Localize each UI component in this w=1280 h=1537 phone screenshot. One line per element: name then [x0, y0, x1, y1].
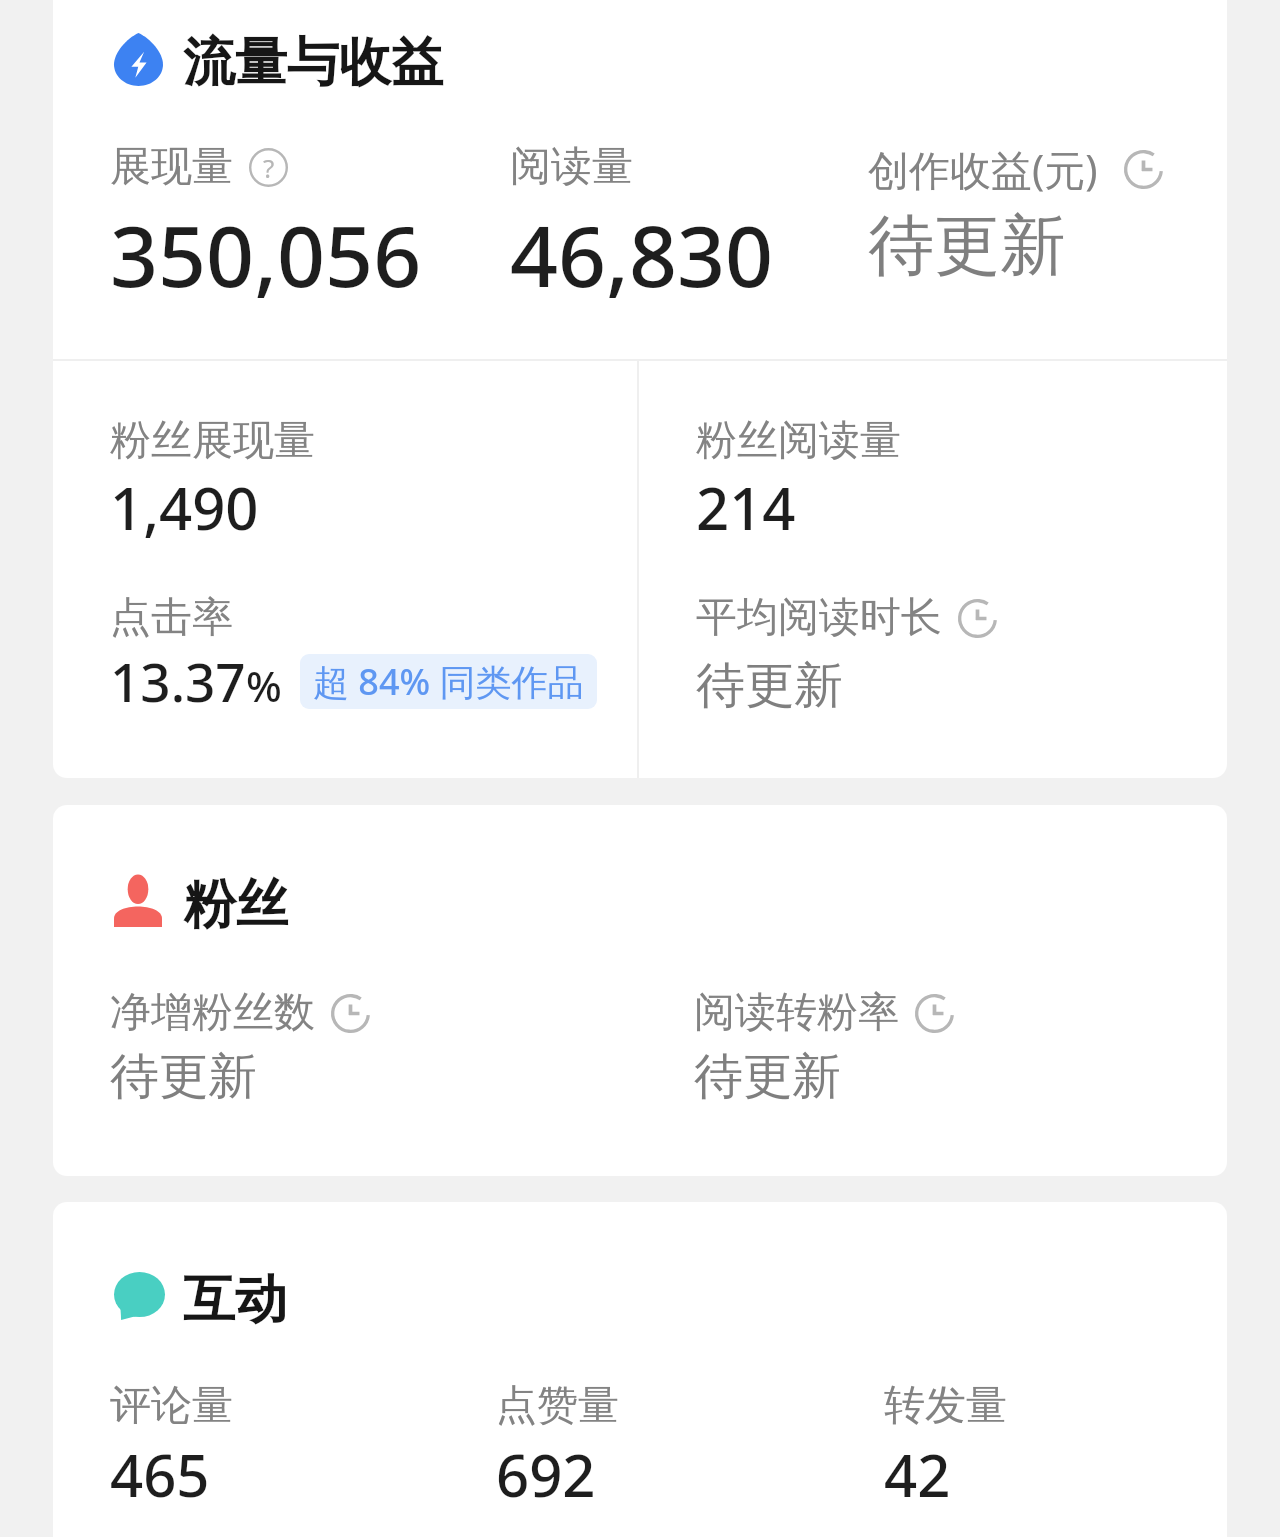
button[interactable]: 阅读量 — [510, 141, 868, 311]
staticText: 465 — [110, 1435, 210, 1514]
button[interactable]: 平均阅读时长 — [696, 592, 997, 717]
staticText: 待更新 — [696, 655, 843, 717]
staticText: ? — [263, 150, 275, 185]
staticText: 创作收益(元) — [868, 141, 1098, 197]
staticText: 阅读转粉率 — [694, 987, 899, 1039]
staticText: 粉丝阅读量 — [696, 415, 901, 467]
button[interactable]: 说明 — [249, 148, 288, 187]
button[interactable]: 净增粉丝数 — [110, 987, 694, 1108]
staticText: 46,830 — [510, 197, 774, 311]
staticText: 评论量 — [110, 1380, 233, 1432]
staticText: 350,056 — [110, 197, 422, 311]
button[interactable]: 粉丝展现量 — [110, 415, 315, 547]
staticText: 平均阅读时长 — [696, 592, 942, 644]
staticText: 超 84% 同类作品 — [313, 657, 584, 706]
staticText: 待更新 — [694, 1046, 841, 1108]
button[interactable]: 超 84% 同类作品 — [300, 654, 597, 709]
staticText: 转发量 — [884, 1380, 1007, 1432]
staticText: 214 — [696, 468, 796, 547]
staticText: 待更新 — [110, 1046, 257, 1108]
staticText: 1,490 — [110, 468, 259, 547]
button[interactable]: 展现量 — [110, 141, 510, 311]
button[interactable]: 粉丝 — [110, 872, 288, 938]
staticText: 692 — [496, 1435, 596, 1514]
button[interactable]: 点赞量 — [496, 1380, 884, 1514]
button[interactable]: 互动 — [110, 1267, 287, 1333]
staticText: 粉丝 — [184, 872, 288, 938]
staticText: 42 — [884, 1435, 951, 1514]
button[interactable]: 阅读转粉率 — [694, 987, 1191, 1108]
staticText: 阅读量 — [510, 141, 633, 193]
staticText: 展现量 — [110, 141, 233, 193]
staticText: 互动 — [183, 1267, 287, 1333]
staticText: % — [246, 657, 282, 714]
staticText: 流量与收益 — [183, 30, 443, 96]
staticText: 点赞量 — [496, 1380, 619, 1432]
staticText: 净增粉丝数 — [110, 987, 315, 1039]
staticText: 待更新 — [868, 204, 1066, 287]
button[interactable]: 创作收益(元) — [868, 141, 1191, 287]
button[interactable]: 粉丝阅读量 — [696, 415, 901, 547]
staticText: 13.37 — [110, 645, 246, 717]
staticText: 粉丝展现量 — [110, 415, 315, 467]
button[interactable]: 转发量 — [884, 1380, 1191, 1514]
staticText: 点击率 — [110, 592, 233, 644]
button[interactable]: 流量与收益 — [110, 30, 443, 96]
button[interactable]: 评论量 — [110, 1380, 496, 1514]
